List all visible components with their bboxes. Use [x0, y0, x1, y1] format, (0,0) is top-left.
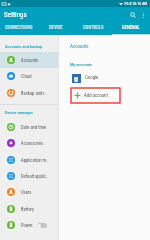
staticText: Accessories [21, 141, 44, 146]
staticText: DEVICE [49, 25, 63, 30]
button[interactable]: Accessories [0, 135, 58, 151]
button[interactable]: Cloud [0, 68, 58, 84]
staticText: Device manager [5, 110, 58, 115]
staticText: Power. [21, 223, 34, 228]
button[interactable]: Battery [0, 201, 58, 217]
button[interactable]: GENERAL [112, 22, 150, 35]
staticText: Add account [84, 93, 108, 99]
staticText: 7% 8 10:16 AM [124, 1, 148, 6]
staticText: Cloud [21, 74, 32, 79]
staticText: CONTROLS [83, 25, 104, 30]
staticText: Accounts [21, 58, 39, 63]
staticText: Google [85, 75, 99, 81]
staticText: Settings [4, 11, 27, 19]
staticText: Default applic.. [21, 174, 49, 179]
staticText: Application m.. [21, 158, 49, 163]
staticText: CONNECTIONS [5, 25, 33, 30]
staticText: GENERAL [122, 25, 140, 30]
staticText: Accounts [70, 43, 150, 49]
button[interactable]: Power. [0, 217, 58, 233]
button[interactable]: Search [127, 9, 138, 20]
button[interactable]: Add account [71, 88, 120, 103]
button[interactable]: DEVICE [37, 22, 74, 35]
button[interactable]: Backup and r.. [0, 85, 58, 101]
button[interactable]: Users [0, 184, 58, 200]
button[interactable]: CONTROLS [74, 22, 112, 35]
button[interactable]: More options [138, 10, 148, 20]
staticText: My accounts [70, 62, 150, 67]
staticText: Date and time [21, 125, 47, 130]
button[interactable]: g [59, 71, 150, 85]
staticText: Users [21, 190, 32, 195]
button[interactable]: Default applic.. [0, 168, 58, 184]
staticText: Accounts and backup [5, 44, 58, 49]
staticText: Battery [21, 207, 34, 212]
button[interactable]: Date and time [0, 119, 58, 135]
button[interactable]: CONNECTIONS [0, 22, 37, 35]
staticText: Backup and r.. [21, 91, 47, 96]
button[interactable]: Accounts [0, 52, 58, 68]
button[interactable]: Application m.. [0, 152, 58, 168]
staticText: g [74, 74, 79, 83]
